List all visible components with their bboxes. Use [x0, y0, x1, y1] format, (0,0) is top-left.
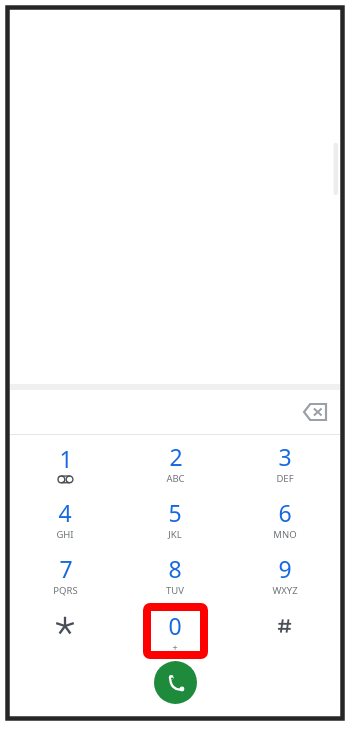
- staticText: MNO: [273, 528, 297, 541]
- staticText: GHI: [56, 528, 74, 541]
- staticText: ABC: [166, 472, 185, 485]
- staticText: PQRS: [53, 584, 78, 597]
- button[interactable]: Backspace: [298, 395, 332, 429]
- button[interactable]: [10, 603, 120, 659]
- staticText: 4: [58, 497, 72, 528]
- button[interactable]: 9: [230, 547, 340, 603]
- button[interactable]: 0: [120, 603, 230, 659]
- staticText: 3: [278, 441, 292, 472]
- staticText: 8: [168, 553, 182, 584]
- button[interactable]: 8: [120, 547, 230, 603]
- staticText: 7: [59, 553, 73, 584]
- button[interactable]: [230, 603, 340, 659]
- button[interactable]: Call: [154, 661, 197, 704]
- staticText: 9: [278, 553, 292, 584]
- staticText: 0: [168, 610, 182, 641]
- staticText: +: [172, 641, 178, 653]
- staticText: 6: [278, 497, 292, 528]
- staticText: WXYZ: [272, 584, 298, 597]
- staticText: 5: [168, 497, 182, 528]
- button[interactable]: 7: [10, 547, 120, 603]
- staticText: JKL: [168, 528, 182, 541]
- button[interactable]: 2: [120, 435, 230, 491]
- button[interactable]: 6: [230, 491, 340, 547]
- button[interactable]: 1: [10, 435, 120, 491]
- button[interactable]: 3: [230, 435, 340, 491]
- staticText: 2: [169, 441, 183, 472]
- staticText: DEF: [276, 472, 294, 485]
- staticText: 1: [59, 443, 73, 474]
- button[interactable]: 5: [120, 491, 230, 547]
- staticText: TUV: [166, 584, 184, 597]
- button[interactable]: 4: [10, 491, 120, 547]
